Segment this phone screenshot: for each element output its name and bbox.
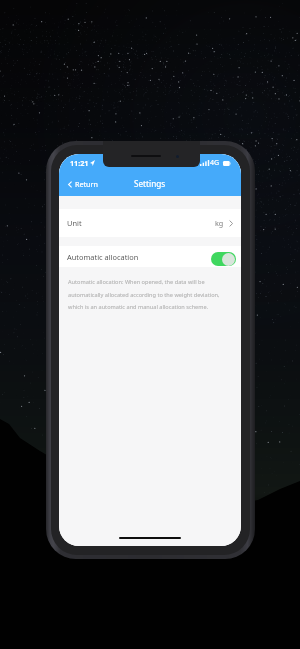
button[interactable]: Return	[68, 179, 98, 189]
staticText: 4G	[210, 158, 220, 168]
staticText: Settings	[134, 178, 166, 189]
staticText: 11:21	[70, 158, 89, 168]
button[interactable]: Automatic allocation toggle	[211, 252, 236, 266]
staticText: Return	[75, 179, 98, 189]
staticText: Unit	[67, 218, 82, 228]
staticText: Automatic allocation	[67, 252, 139, 262]
staticText: Automatic allocation: When opened, the d…	[68, 278, 224, 310]
button[interactable]: Unit	[59, 209, 241, 237]
staticText: kg	[215, 218, 224, 228]
